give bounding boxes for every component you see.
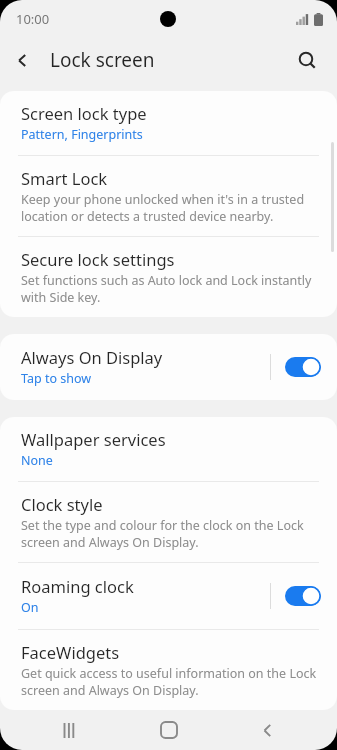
staticText: Screen lock type	[21, 102, 147, 124]
button[interactable]: Back	[238, 710, 296, 750]
staticText: Always On Display	[21, 346, 163, 368]
staticText: Clock style	[21, 493, 103, 515]
button[interactable]: Screen lock type	[0, 91, 337, 155]
button[interactable]: FaceWidgets	[0, 630, 337, 710]
staticText: Roaming clock	[21, 575, 134, 597]
button[interactable]: Smart Lock	[0, 156, 337, 236]
staticText: Wallpaper services	[21, 428, 166, 450]
staticText: Set the type and colour for the clock on…	[21, 517, 304, 550]
button[interactable]: Wallpaper services	[0, 417, 337, 481]
button[interactable]: Toggle Always On Display	[285, 357, 321, 377]
button[interactable]: Always On Display	[0, 334, 337, 400]
staticText: On	[21, 599, 39, 616]
staticText: 10:00	[16, 10, 50, 28]
staticText: FaceWidgets	[21, 641, 120, 663]
button[interactable]: Toggle Roaming clock	[285, 586, 321, 606]
button[interactable]: Recents	[41, 710, 99, 750]
staticText: Smart Lock	[21, 167, 108, 189]
button[interactable]: Clock style	[0, 482, 337, 562]
button[interactable]: Home	[140, 710, 198, 750]
staticText: Set functions such as Auto lock and Lock…	[21, 272, 312, 305]
staticText: Tap to show	[21, 370, 92, 387]
staticText: Pattern, Fingerprints	[21, 126, 143, 143]
button[interactable]: Roaming clock	[0, 563, 337, 629]
staticText: Keep your phone unlocked when it's in a …	[21, 191, 305, 224]
button[interactable]: Secure lock settings	[0, 237, 337, 317]
staticText: Get quick access to useful information o…	[21, 665, 317, 698]
button[interactable]: Search	[285, 38, 329, 82]
staticText: None	[21, 452, 53, 469]
button[interactable]: Back	[0, 38, 44, 82]
staticText: Lock screen	[50, 47, 155, 73]
staticText: Secure lock settings	[21, 248, 175, 270]
